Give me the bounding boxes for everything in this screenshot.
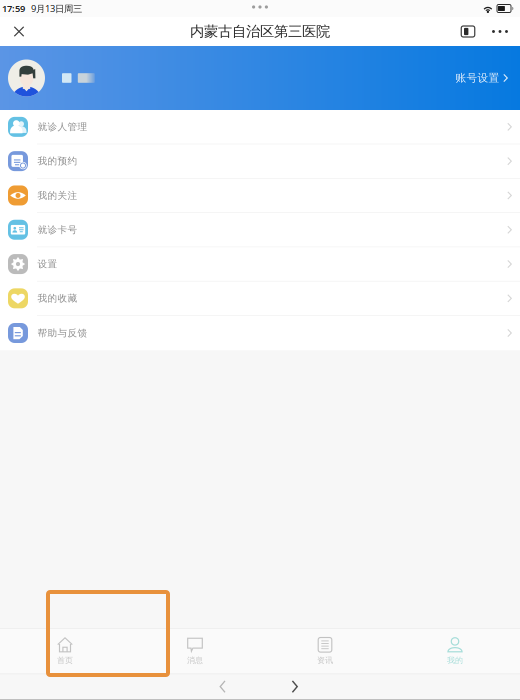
staticText: 内蒙古自治区第三医院	[190, 22, 330, 40]
staticText: 账号设置	[456, 71, 500, 85]
button[interactable]: 就诊卡号	[0, 213, 520, 247]
button[interactable]: 设置	[0, 247, 520, 281]
button[interactable]: 更多	[484, 17, 516, 46]
button[interactable]: 消息	[130, 629, 260, 674]
button[interactable]: 关闭	[2, 17, 36, 46]
button[interactable]: 后退	[205, 675, 240, 698]
button[interactable]: 帮助与反馈	[0, 316, 520, 350]
button[interactable]: 资讯	[260, 629, 390, 674]
staticText: 我的收藏	[37, 292, 77, 304]
staticText: 我的	[447, 655, 463, 665]
button[interactable]: 就诊人管理	[0, 110, 520, 144]
staticText: 资讯	[317, 655, 333, 665]
staticText: 我的关注	[37, 189, 77, 201]
button[interactable]: 我的收藏	[0, 281, 520, 316]
staticText: 消息	[187, 655, 203, 665]
staticText: 17:59	[2, 2, 25, 15]
button[interactable]: 前进	[277, 675, 312, 698]
staticText: 我的预约	[37, 155, 77, 167]
button[interactable]: 我的	[390, 629, 520, 674]
staticText: 设置	[37, 258, 57, 270]
staticText: 就诊人管理	[37, 121, 87, 133]
staticText: 首页	[57, 655, 73, 665]
staticText: 就诊卡号	[37, 224, 77, 236]
button[interactable]: 首页	[0, 629, 130, 674]
button[interactable]: 小窗	[452, 17, 484, 46]
staticText: 9月13日周三	[31, 2, 82, 15]
button[interactable]: 我的预约	[0, 144, 520, 179]
button[interactable]: 账号设置	[444, 61, 516, 95]
button[interactable]: 我的关注	[0, 179, 520, 213]
staticText: 帮助与反馈	[37, 327, 87, 339]
